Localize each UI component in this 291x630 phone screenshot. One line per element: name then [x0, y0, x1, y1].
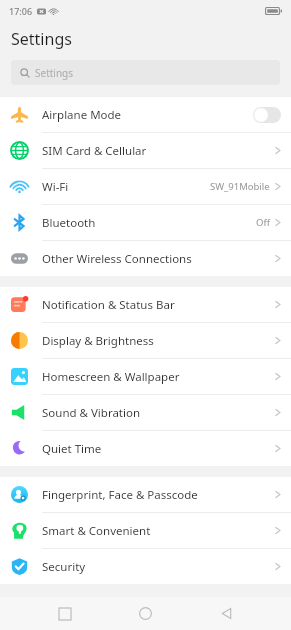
button[interactable]: Bluetooth [0, 205, 291, 240]
button[interactable]: Home [129, 597, 162, 630]
button[interactable]: SIM Card & Cellular [0, 133, 291, 168]
staticText: SIM Card & Cellular [42, 143, 147, 159]
staticText: Security [42, 559, 86, 575]
staticText: Settings [35, 66, 74, 80]
button[interactable]: Sound & Vibration [0, 395, 291, 430]
staticText: Notification & Status Bar [42, 297, 175, 313]
staticText: Other Wireless Connections [42, 251, 192, 267]
staticText: Off [256, 216, 270, 229]
staticText: Display & Brightness [42, 333, 154, 349]
button[interactable]: Quiet Time [0, 431, 291, 466]
button[interactable]: Display & Brightness [0, 323, 291, 358]
button[interactable]: Security [0, 549, 291, 584]
staticText: SW_91Mobile [210, 180, 270, 193]
staticText: Quiet Time [42, 441, 102, 457]
button[interactable]: Smart & Convenient [0, 513, 291, 548]
staticText: Homescreen & Wallpaper [42, 369, 180, 385]
staticText: Settings [11, 28, 72, 50]
button[interactable]: Airplane Mode toggle [253, 107, 281, 123]
staticText: Fingerprint, Face & Passcode [42, 487, 198, 503]
button[interactable]: Wi-Fi [0, 169, 291, 204]
staticText: Bluetooth [42, 215, 96, 231]
button[interactable]: Homescreen & Wallpaper [0, 359, 291, 394]
staticText: Airplane Mode [42, 107, 122, 123]
button[interactable]: Fingerprint, Face & Passcode [0, 477, 291, 512]
button[interactable]: Airplane Mode [0, 97, 291, 132]
staticText: 17:06 [9, 5, 33, 17]
button[interactable]: Recent apps [48, 597, 81, 630]
staticText: Sound & Vibration [42, 405, 141, 421]
staticText: Smart & Convenient [42, 523, 151, 539]
staticText: Wi-Fi [42, 179, 69, 195]
button[interactable]: Settings [11, 60, 280, 85]
button[interactable]: Notification & Status Bar [0, 287, 291, 322]
button[interactable]: Other Wireless Connections [0, 241, 291, 276]
button[interactable]: Back [210, 597, 243, 630]
